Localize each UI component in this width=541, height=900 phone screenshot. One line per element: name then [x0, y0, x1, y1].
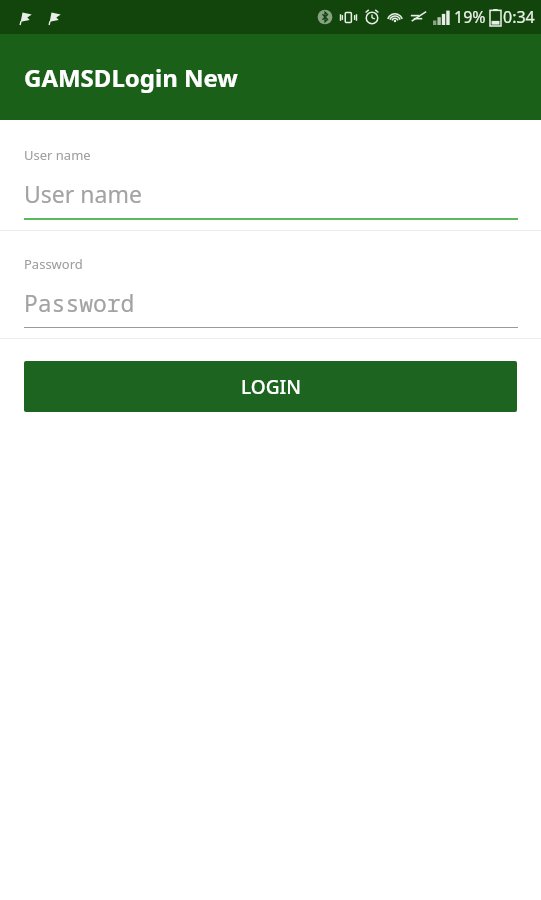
staticText: 0:34 [503, 6, 535, 28]
staticText: LOGIN [241, 374, 301, 400]
button[interactable]: Password [0, 231, 541, 338]
button[interactable]: LOGIN [24, 361, 517, 412]
staticText: User name [24, 178, 142, 209]
staticText: GAMSDLogin New [24, 61, 238, 94]
staticText: Password [24, 255, 83, 273]
staticText: Password [24, 287, 135, 318]
button[interactable]: User name [0, 122, 541, 230]
staticText: 19% [454, 6, 486, 28]
staticText: User name [24, 146, 91, 164]
